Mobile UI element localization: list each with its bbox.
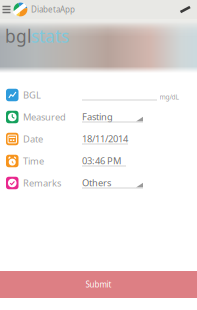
staticText: Others [82,176,111,189]
staticText: 03:46 PM [82,154,121,167]
button[interactable]: Submit [0,271,197,298]
staticText: Measured [23,111,66,123]
staticText: DiabetaApp [31,4,75,15]
staticText: stats [31,24,69,47]
button[interactable]: Remarks [0,172,197,194]
staticText: 18/11/2014 [82,132,128,145]
staticText: Submit [85,279,111,290]
button[interactable]: Time [0,150,197,172]
staticText: Fasting [82,110,113,123]
staticText: BGL [23,89,41,101]
staticText: Date [23,133,43,145]
staticText: Remarks [23,177,61,189]
button[interactable]: Menu [0,0,13,19]
button[interactable]: BGL [0,84,197,106]
staticText: mg/dL [159,93,178,101]
staticText: Time [23,155,44,167]
button[interactable]: New entry [174,0,197,19]
button[interactable]: Date [0,128,197,150]
staticText: bgl [5,24,31,47]
button[interactable]: Measured [0,106,197,128]
